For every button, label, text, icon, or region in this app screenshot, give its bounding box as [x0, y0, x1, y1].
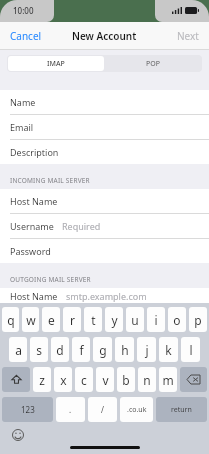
staticText: e	[48, 312, 55, 328]
staticText: m	[162, 372, 174, 388]
button[interactable]: a	[9, 337, 27, 362]
button[interactable]: p	[189, 307, 207, 332]
button[interactable]: m	[159, 367, 177, 392]
button[interactable]: o	[168, 307, 186, 332]
button[interactable]: w	[22, 307, 39, 332]
button[interactable]: d	[51, 337, 69, 362]
staticText: Username	[10, 220, 54, 232]
staticText: b	[122, 372, 130, 388]
staticText: 10:00	[13, 5, 34, 16]
button[interactable]: b	[117, 367, 135, 392]
button[interactable]: e	[42, 307, 60, 332]
button[interactable]: 123	[2, 397, 53, 422]
button[interactable]: Shift	[2, 367, 30, 392]
button[interactable]: Emoji	[11, 428, 25, 442]
button[interactable]: u	[126, 307, 144, 332]
staticText: smtp.example.com	[66, 290, 147, 302]
button[interactable]: Password	[0, 239, 209, 263]
staticText: w	[26, 312, 36, 328]
staticText: q	[7, 312, 15, 328]
staticText: n	[143, 372, 151, 388]
button[interactable]: h	[115, 337, 134, 362]
staticText: INCOMING MAIL SERVER	[10, 176, 90, 185]
staticText: /	[101, 404, 104, 415]
button[interactable]: POP	[104, 56, 201, 71]
button[interactable]: t	[84, 307, 102, 332]
button[interactable]: g	[93, 337, 112, 362]
staticText: Email	[10, 121, 34, 133]
button[interactable]: Name	[0, 90, 209, 115]
button[interactable]: s	[30, 337, 48, 362]
staticText: d	[56, 342, 64, 358]
staticText: k	[165, 342, 172, 358]
button[interactable]: Cancel	[0, 22, 52, 50]
button[interactable]: Username	[0, 214, 209, 239]
button[interactable]: i	[147, 307, 165, 332]
button[interactable]: y	[105, 307, 123, 332]
button[interactable]: Description	[0, 140, 209, 164]
staticText: t	[91, 312, 96, 328]
staticText: 123	[21, 404, 35, 415]
staticText: v	[102, 372, 109, 388]
button[interactable]: Next	[167, 22, 209, 50]
staticText: OUTGOING MAIL SERVER	[10, 275, 91, 284]
staticText: c	[81, 372, 87, 388]
staticText: Host Name	[10, 195, 58, 207]
button[interactable]: r	[63, 307, 81, 332]
staticText: f	[79, 342, 84, 358]
staticText: p	[194, 312, 202, 328]
staticText: z	[39, 372, 45, 388]
button[interactable]: k	[159, 337, 178, 362]
staticText: New Account	[72, 29, 137, 43]
staticText: g	[99, 342, 107, 358]
button[interactable]: l	[181, 337, 200, 362]
staticText: j	[145, 342, 149, 358]
staticText: i	[154, 312, 158, 328]
button[interactable]: .	[56, 397, 85, 422]
staticText: IMAP	[47, 59, 65, 69]
button[interactable]: q	[2, 307, 19, 332]
button[interactable]: Host Name	[0, 288, 209, 303]
staticText: y	[111, 312, 118, 328]
staticText: Password	[10, 245, 51, 257]
button[interactable]: Host Name	[0, 189, 209, 214]
button[interactable]: v	[96, 367, 114, 392]
staticText: x	[60, 372, 67, 388]
button[interactable]: f	[72, 337, 90, 362]
staticText: o	[173, 312, 181, 328]
staticText: POP	[146, 59, 160, 69]
button[interactable]: Email	[0, 115, 209, 140]
button[interactable]: return	[156, 397, 207, 422]
staticText: s	[36, 342, 42, 358]
staticText: Required	[62, 220, 101, 232]
staticText: h	[121, 342, 129, 358]
staticText: Cancel	[10, 29, 42, 43]
staticText: u	[131, 312, 139, 328]
button[interactable]: /	[88, 397, 117, 422]
staticText: return	[171, 405, 192, 415]
button[interactable]: j	[137, 337, 156, 362]
staticText: Host Name	[10, 290, 58, 302]
button[interactable]: z	[33, 367, 51, 392]
staticText: a	[15, 342, 22, 358]
button[interactable]: x	[54, 367, 72, 392]
staticText: r	[70, 312, 75, 328]
staticText: l	[189, 342, 193, 358]
staticText: .co.uk	[127, 405, 147, 415]
button[interactable]: c	[75, 367, 93, 392]
button[interactable]: IMAP	[8, 56, 104, 71]
staticText: Description	[10, 146, 59, 158]
staticText: .	[69, 404, 72, 415]
button[interactable]: Backspace	[180, 367, 207, 392]
button[interactable]: n	[138, 367, 156, 392]
staticText: Name	[10, 96, 36, 108]
button[interactable]: .co.uk	[120, 397, 153, 422]
staticText: Next	[177, 29, 199, 43]
